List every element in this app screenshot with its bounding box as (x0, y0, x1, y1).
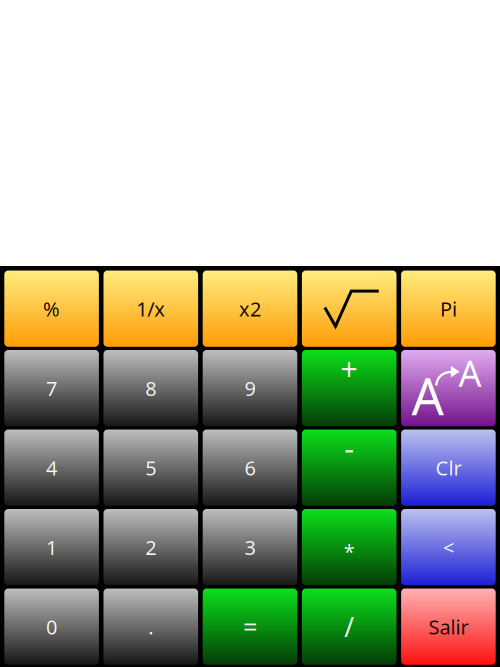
staticText: = (243, 610, 257, 643)
button[interactable]: 0 (4, 588, 99, 665)
button[interactable]: / (302, 588, 396, 665)
button[interactable]: + (302, 350, 396, 426)
staticText: 4 (46, 454, 57, 481)
staticText: / (344, 609, 354, 644)
button[interactable]: Salir (401, 588, 496, 665)
button[interactable]: 9 (203, 350, 297, 426)
staticText: A (411, 362, 443, 429)
staticText: ‐ (344, 427, 354, 468)
button[interactable]: Square root (302, 270, 396, 347)
button[interactable]: 2 (103, 509, 198, 585)
staticText: . (148, 613, 153, 640)
staticText: * (344, 538, 355, 564)
staticText: 1/x (136, 295, 165, 322)
staticText: 5 (145, 454, 156, 481)
staticText: Salir (428, 613, 468, 640)
staticText: Pi (440, 295, 457, 322)
staticText: 9 (244, 375, 255, 401)
button[interactable]: 7 (4, 350, 99, 426)
button[interactable]: < (401, 509, 496, 585)
button[interactable]: Pi (401, 270, 496, 347)
button[interactable]: 6 (203, 429, 297, 506)
button[interactable]: Change text size (401, 350, 496, 426)
staticText: + (340, 348, 358, 388)
button[interactable]: 4 (4, 429, 99, 506)
staticText: 8 (145, 375, 156, 401)
staticText: 6 (244, 454, 255, 481)
button[interactable]: 8 (103, 350, 198, 426)
staticText: x2 (239, 295, 261, 322)
button[interactable]: Clr (401, 429, 496, 506)
staticText: Clr (435, 454, 461, 481)
button[interactable]: x2 (203, 270, 297, 347)
button[interactable]: * (302, 509, 396, 585)
button[interactable]: . (103, 588, 198, 665)
staticText: 1 (46, 534, 57, 560)
button[interactable]: 3 (203, 509, 297, 585)
staticText: 7 (46, 375, 57, 401)
staticText: 3 (244, 534, 255, 560)
button[interactable]: = (203, 588, 297, 665)
staticText: A (458, 349, 481, 397)
button[interactable]: % (4, 270, 99, 347)
button[interactable]: 1 (4, 509, 99, 585)
button[interactable]: 5 (103, 429, 198, 506)
button[interactable]: 1/x (103, 270, 198, 347)
staticText: < (443, 534, 454, 560)
staticText: 2 (145, 534, 156, 560)
staticText: 0 (46, 613, 57, 640)
button[interactable]: ‐ (302, 429, 396, 506)
staticText: % (43, 295, 60, 322)
